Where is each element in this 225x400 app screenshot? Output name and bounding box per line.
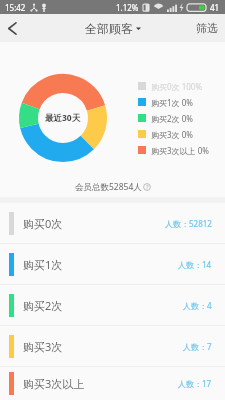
staticText: 人数：17: [178, 378, 212, 389]
staticText: 购买0次: [23, 216, 63, 231]
staticText: 人数：7: [183, 341, 212, 352]
staticText: 购买3次 0%: [151, 129, 193, 140]
button[interactable]: 购买1次: [0, 244, 225, 284]
staticText: 最近30天: [45, 112, 81, 124]
staticText: 购买2次 0%: [151, 113, 193, 124]
staticText: 人数：4: [183, 300, 212, 311]
button[interactable]: 购买3次: [0, 326, 225, 366]
staticText: 购买3次: [23, 339, 63, 354]
staticText: 购买0次 100%: [151, 81, 203, 92]
button[interactable]: 全部顾客: [85, 21, 141, 36]
staticText: 购买3次以上: [23, 376, 85, 391]
staticText: 会员总数52854人: [75, 181, 142, 193]
staticText: 15:42: [5, 2, 26, 13]
staticText: 人数：52812: [165, 218, 212, 229]
button[interactable]: 购买3次以上: [0, 367, 225, 400]
staticText: 筛选: [196, 21, 218, 35]
button[interactable]: Back: [0, 14, 24, 42]
staticText: 全部顾客: [85, 21, 133, 36]
button[interactable]: 筛选: [189, 14, 225, 42]
staticText: 购买2次: [23, 298, 63, 313]
staticText: 41: [210, 2, 220, 13]
staticText: 1.12%: [116, 2, 139, 13]
staticText: 购买3次以上 0%: [151, 145, 209, 156]
staticText: 购买1次: [23, 257, 63, 272]
staticText: ?: [146, 183, 149, 191]
staticText: 购买1次 0%: [151, 97, 193, 108]
button[interactable]: 购买0次: [0, 203, 225, 243]
button[interactable]: 购买2次: [0, 285, 225, 325]
staticText: 人数：14: [178, 259, 212, 270]
